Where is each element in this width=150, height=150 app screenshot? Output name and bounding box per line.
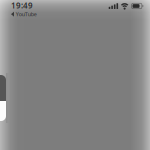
staticText: 19:49: [11, 0, 33, 11]
staticText: YouTube: [16, 11, 37, 18]
